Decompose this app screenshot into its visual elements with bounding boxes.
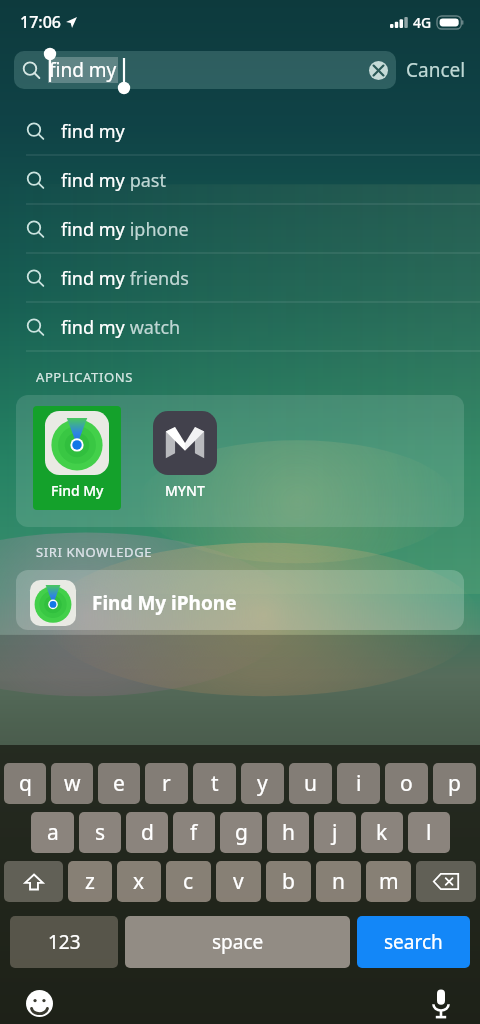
button[interactable]: t — [193, 763, 236, 804]
staticText: find my — [61, 217, 125, 242]
staticText: d — [141, 818, 154, 847]
staticText: y — [257, 769, 268, 798]
button[interactable]: search — [357, 916, 470, 968]
button[interactable]: Find My — [33, 406, 121, 510]
staticText: g — [235, 818, 248, 847]
button[interactable]: s — [79, 812, 121, 853]
staticText: m — [379, 867, 399, 896]
button[interactable]: find my — [0, 303, 480, 352]
staticText: search — [384, 929, 443, 955]
staticText: past — [125, 168, 166, 193]
button[interactable]: 123 — [10, 916, 118, 968]
button[interactable]: k — [361, 812, 403, 853]
staticText: r — [162, 769, 171, 798]
button[interactable]: w — [51, 763, 93, 804]
button[interactable]: Backspace — [416, 861, 476, 902]
staticText: s — [95, 818, 106, 847]
button[interactable]: d — [126, 812, 168, 853]
staticText: n — [332, 867, 345, 896]
staticText: z — [85, 867, 95, 896]
staticText: find my — [61, 119, 125, 144]
button[interactable]: g — [220, 812, 262, 853]
button[interactable]: j — [314, 812, 356, 853]
button[interactable]: f — [173, 812, 215, 853]
staticText: e — [113, 769, 125, 798]
staticText: SIRI KNOWLEDGE — [36, 543, 153, 561]
staticText: a — [47, 818, 59, 847]
button[interactable]: find my — [0, 107, 480, 156]
button[interactable]: e — [98, 763, 140, 804]
staticText: 123 — [48, 929, 81, 955]
staticText: h — [282, 818, 295, 847]
staticText: w — [64, 769, 81, 798]
staticText: o — [400, 769, 413, 798]
button[interactable]: m — [366, 861, 411, 902]
button[interactable]: c — [166, 861, 211, 902]
button[interactable]: p — [433, 763, 476, 804]
staticText: j — [332, 818, 338, 847]
staticText: find my — [61, 168, 125, 193]
button[interactable]: b — [266, 861, 311, 902]
button[interactable]: q — [4, 763, 46, 804]
button[interactable]: y — [241, 763, 284, 804]
button[interactable]: find my — [0, 205, 480, 254]
button[interactable]: Cancel — [406, 57, 466, 83]
staticText: p — [448, 769, 461, 798]
button[interactable]: Clear text — [369, 61, 388, 80]
button[interactable]: x — [117, 861, 161, 902]
staticText: APPLICATIONS — [36, 368, 133, 386]
button[interactable]: MYNT — [141, 411, 229, 500]
staticText: v — [233, 867, 244, 896]
button[interactable]: find my — [14, 51, 396, 89]
staticText: 4G — [413, 13, 432, 32]
button[interactable]: v — [216, 861, 261, 902]
button[interactable]: h — [267, 812, 309, 853]
staticText: Find My iPhone — [92, 590, 237, 616]
staticText: Find My — [51, 481, 104, 500]
staticText: Cancel — [406, 57, 466, 83]
button[interactable]: find my — [0, 254, 480, 303]
button[interactable]: o — [385, 763, 428, 804]
staticText: iphone — [125, 217, 189, 242]
button[interactable]: find my — [0, 156, 480, 205]
staticText: l — [426, 818, 432, 847]
staticText: k — [376, 818, 388, 847]
staticText: 17:06 — [20, 11, 61, 33]
staticText: MYNT — [165, 481, 205, 500]
staticText: watch — [125, 315, 181, 340]
staticText: friends — [125, 266, 189, 291]
button[interactable]: space — [125, 916, 350, 968]
staticText: u — [304, 769, 317, 798]
staticText: t — [211, 769, 219, 798]
button[interactable]: r — [145, 763, 188, 804]
button[interactable]: Find My iPhone — [16, 570, 464, 630]
button[interactable]: u — [289, 763, 332, 804]
staticText: x — [133, 867, 145, 896]
staticText: c — [183, 867, 194, 896]
button[interactable]: a — [31, 812, 74, 853]
staticText: i — [356, 769, 362, 798]
staticText: b — [282, 867, 295, 896]
button[interactable]: Dictate — [424, 986, 458, 1020]
button[interactable]: Emoji keyboard — [22, 986, 56, 1020]
button[interactable]: l — [408, 812, 450, 853]
staticText: find my — [49, 57, 117, 83]
staticText: find my — [61, 315, 125, 340]
button[interactable]: n — [316, 861, 361, 902]
button[interactable]: Shift — [4, 861, 63, 902]
staticText: space — [212, 929, 264, 955]
button[interactable]: i — [337, 763, 380, 804]
staticText: f — [190, 818, 198, 847]
staticText: q — [19, 769, 32, 798]
staticText: find my — [61, 266, 125, 291]
button[interactable]: z — [68, 861, 112, 902]
